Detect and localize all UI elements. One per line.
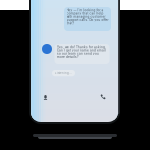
button[interactable]: Mute microphone <box>42 94 49 101</box>
staticText: Listening... <box>55 71 72 75</box>
button[interactable]: End call <box>100 94 107 101</box>
staticText: Hey — I'm looking for a company that can… <box>66 8 108 25</box>
staticText: Yes, we do! Thanks for asking. Can I get… <box>57 45 106 59</box>
